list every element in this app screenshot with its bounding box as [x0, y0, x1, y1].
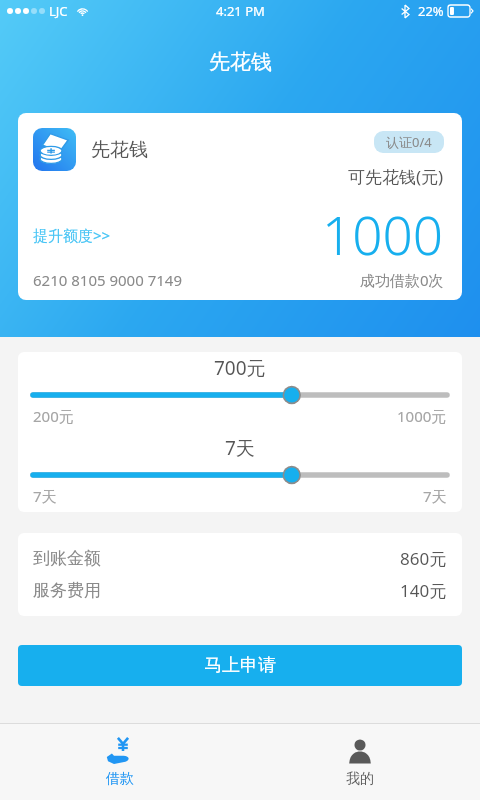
staticText: 服务费用	[33, 580, 101, 601]
button[interactable]: 马上申请	[18, 645, 462, 686]
button[interactable]: 认证0/4	[386, 133, 432, 151]
staticText: 700元	[214, 355, 266, 381]
staticText: 1000元	[397, 406, 447, 426]
staticText: 6210 8105 9000 7149	[33, 270, 182, 290]
staticText: 借款	[106, 770, 134, 788]
button[interactable]: 提升额度>>	[33, 225, 111, 245]
staticText: 200元	[33, 406, 74, 426]
staticText: 提升额度>>	[33, 225, 111, 245]
staticText: 7天	[423, 486, 447, 506]
button[interactable]	[33, 384, 447, 406]
staticText: 到账金额	[33, 548, 101, 569]
staticText: 成功借款0次	[360, 270, 444, 290]
staticText: 先花钱	[91, 138, 148, 162]
staticText: 我的	[346, 770, 374, 788]
staticText: 7天	[33, 486, 57, 506]
button[interactable]	[33, 464, 447, 486]
staticText: 860元	[400, 547, 447, 570]
button[interactable]: 借款	[0, 724, 240, 800]
button[interactable]: 我的	[240, 724, 480, 800]
staticText: 认证0/4	[386, 133, 432, 151]
staticText: 1000	[322, 198, 444, 270]
staticText: 22%	[418, 2, 444, 20]
staticText: 4:21 PM	[216, 2, 265, 20]
button[interactable]: 先花钱	[18, 113, 462, 300]
staticText: LJC	[49, 2, 68, 20]
staticText: 7天	[225, 435, 255, 461]
staticText: 140元	[400, 579, 447, 602]
staticText: 可先花钱(元)	[348, 165, 444, 188]
staticText: 先花钱	[209, 49, 272, 75]
staticText: 马上申请	[204, 654, 276, 677]
